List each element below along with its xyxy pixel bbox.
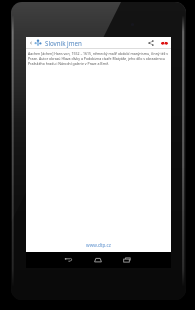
button[interactable]: Back [58,252,80,268]
button[interactable]: Share [144,37,158,49]
button[interactable]: Recent apps [116,252,138,268]
button[interactable]: Home [87,252,109,268]
staticText: Slovník jmen [45,39,82,47]
button[interactable]: More options [158,37,171,49]
button[interactable]: Navigate up [28,37,43,49]
button[interactable]: www.dtp.cz [86,242,111,248]
staticText: www.dtp.cz [86,242,111,248]
staticText: Aachen [áchen] Hans von, 1552 – 1615, ně… [28,51,169,66]
